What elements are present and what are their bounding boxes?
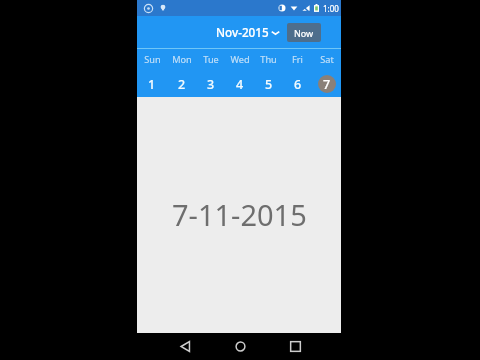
button[interactable]: 7 (312, 69, 341, 97)
staticText: 1:00 (323, 3, 339, 14)
button[interactable]: Back (163, 333, 207, 360)
button[interactable]: 3 (196, 69, 225, 97)
staticText: Sat (320, 53, 334, 66)
button[interactable]: Home (218, 333, 262, 360)
staticText: 7-11-2015 (172, 195, 307, 234)
button[interactable]: Nov-2015 (214, 21, 282, 43)
staticText: 3 (207, 76, 215, 93)
button[interactable]: 5 (254, 69, 283, 97)
staticText: 4 (236, 76, 244, 93)
button[interactable]: Recents (273, 333, 317, 360)
staticText: Thu (260, 53, 277, 66)
staticText: Mon (172, 53, 192, 66)
staticText: 7 (323, 76, 331, 93)
staticText: Tue (203, 53, 219, 66)
button[interactable]: 2 (167, 69, 196, 97)
button[interactable]: 6 (283, 69, 312, 97)
button[interactable]: Now (287, 23, 321, 42)
staticText: Now (294, 27, 314, 39)
staticText: 5 (265, 76, 273, 93)
staticText: 6 (294, 76, 302, 93)
staticText: Fri (292, 53, 303, 66)
staticText: 2 (178, 76, 186, 93)
staticText: 1 (148, 76, 156, 93)
button[interactable]: 4 (225, 69, 254, 97)
staticText: Nov-2015 (216, 24, 269, 40)
staticText: Wed (230, 53, 250, 66)
button[interactable]: 1 (137, 69, 167, 97)
staticText: Sun (144, 53, 161, 66)
